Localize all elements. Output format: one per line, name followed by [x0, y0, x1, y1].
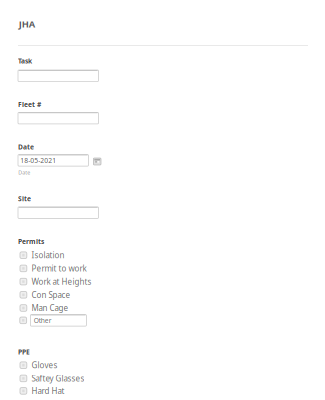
button[interactable]: Fleet #: [18, 112, 98, 124]
staticText: 18-05-2021: [20, 156, 56, 165]
button[interactable]: Choose date: [93, 158, 101, 165]
button[interactable]: Man Cage: [20, 303, 130, 313]
staticText: Date: [18, 142, 34, 151]
staticText: Man Cage: [31, 303, 68, 313]
button[interactable]: Saftey Glasses: [20, 373, 130, 383]
staticText: Isolation: [31, 250, 64, 260]
staticText: Other: [34, 316, 52, 325]
button[interactable]: Work at Heights: [20, 277, 130, 287]
staticText: JHA: [19, 18, 35, 30]
button[interactable]: Con Space: [20, 290, 130, 300]
staticText: Hard Hat: [31, 386, 64, 396]
staticText: Date: [18, 169, 30, 176]
staticText: Permit to work: [31, 263, 86, 274]
staticText: Work at Heights: [31, 276, 91, 287]
button[interactable]: Task: [18, 70, 98, 81]
button[interactable]: Site: [18, 207, 98, 218]
staticText: Con Space: [31, 289, 70, 300]
staticText: PPE: [18, 348, 30, 356]
staticText: Gloves: [31, 360, 57, 370]
staticText: Permits: [18, 237, 44, 246]
staticText: Saftey Glasses: [31, 373, 84, 384]
staticText: Fleet #: [18, 100, 41, 109]
button[interactable]: Permit to work: [20, 263, 130, 273]
staticText: Task: [18, 56, 32, 65]
button[interactable]: Isolation: [20, 250, 130, 260]
button[interactable]: Hard Hat: [20, 386, 130, 396]
button[interactable]: Other: [20, 315, 130, 326]
staticText: Site: [18, 194, 31, 203]
button[interactable]: Date: [18, 155, 88, 166]
button[interactable]: Gloves: [20, 360, 130, 370]
